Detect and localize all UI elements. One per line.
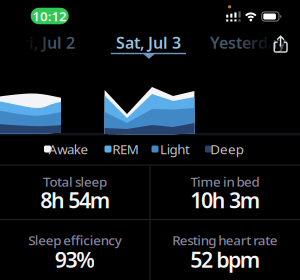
staticText: Resting heart rate [172,231,278,249]
staticText: Deep [210,140,244,158]
staticText: Fri, Jul 2 [13,32,75,53]
button[interactable]: Fri, Jul 2 [13,32,75,53]
staticText: Yesterday [210,32,286,53]
button[interactable]: Sat, Jul 3 [108,30,188,62]
button[interactable]: Yesterday [210,32,286,53]
staticText: REM [112,140,139,158]
staticText: 52 bpm [190,245,260,274]
staticText: 93% [55,245,95,274]
button[interactable]: Share [272,33,292,55]
staticText: 10:12 [32,7,67,25]
staticText: 8h 54m [40,186,110,214]
staticText: 10h 3m [190,186,260,214]
staticText: Total sleep [43,173,107,190]
staticText: Time in bed [190,173,259,190]
button[interactable]: 10:12 [31,8,69,24]
staticText: Light [160,140,190,158]
staticText: Sleep efficiency [28,231,122,249]
staticText: Awake [48,140,89,158]
staticText: Sat, Jul 3 [116,32,181,53]
